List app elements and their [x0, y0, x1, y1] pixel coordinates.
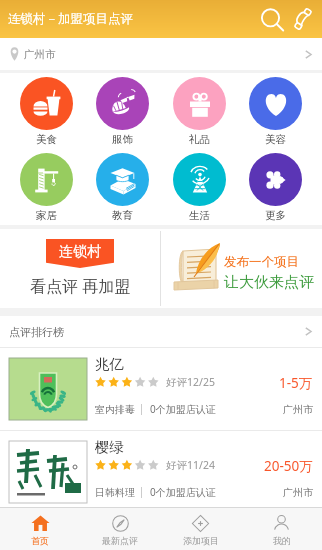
button[interactable]: 添加项目 — [160, 508, 241, 550]
button[interactable]: 广州市 — [0, 38, 322, 70]
staticText: 点评排行榜 — [9, 325, 64, 339]
staticText: 日韩料理 — [95, 486, 135, 499]
staticText: 好评11/24 — [166, 458, 215, 472]
staticText: 教育 — [112, 209, 133, 222]
staticText: 0个加盟店认证 — [150, 485, 216, 499]
button[interactable]: 教育 — [93, 149, 152, 222]
button[interactable]: 礼品 — [170, 73, 229, 146]
staticText: 20-50万 — [264, 457, 313, 473]
staticText: 礼品 — [189, 133, 210, 146]
button[interactable]: 家居 — [17, 149, 76, 222]
staticText: 服饰 — [112, 133, 133, 146]
staticText: 广州市 — [283, 486, 313, 499]
staticText: 连锁村－加盟项目点评 — [8, 11, 133, 27]
staticText: 添加项目 — [183, 535, 219, 546]
button[interactable]: 兆亿 — [0, 348, 322, 430]
staticText: 生活 — [189, 209, 210, 222]
staticText: 室内排毒 — [95, 403, 135, 416]
button[interactable]: 服饰 — [93, 73, 152, 146]
button[interactable]: Search — [255, 0, 289, 38]
button[interactable]: 发布一个项目 — [161, 229, 322, 308]
button[interactable]: 连锁村 — [0, 229, 160, 308]
staticText: 我的 — [273, 535, 291, 546]
button[interactable]: 首页 — [0, 508, 80, 550]
button[interactable]: 点评排行榜 — [0, 316, 322, 347]
button[interactable]: 最新点评 — [80, 508, 160, 550]
staticText: 首页 — [31, 535, 49, 546]
staticText: 樱绿 — [95, 438, 124, 454]
staticText: 美食 — [36, 133, 57, 146]
staticText: 最新点评 — [102, 535, 138, 546]
button[interactable]: 更多 — [246, 149, 305, 222]
staticText: 发布一个项目 — [224, 254, 299, 270]
staticText: 好评12/25 — [166, 375, 215, 389]
staticText: 美容 — [265, 133, 286, 146]
staticText: 连锁村 — [59, 243, 101, 261]
staticText: 1-5万 — [279, 374, 313, 390]
button[interactable]: 我的 — [241, 508, 322, 550]
button[interactable]: Call — [289, 0, 317, 38]
staticText: 家居 — [36, 209, 57, 222]
staticText: 更多 — [265, 209, 286, 222]
button[interactable]: 樱绿 — [0, 431, 322, 513]
button[interactable]: 美食 — [17, 73, 76, 146]
staticText: 兆亿 — [95, 355, 124, 371]
staticText: 看点评 再加盟 — [30, 275, 131, 297]
staticText: 0个加盟店认证 — [150, 402, 216, 416]
button[interactable]: 生活 — [170, 149, 229, 222]
button[interactable]: 美容 — [246, 73, 305, 146]
staticText: 广州市 — [283, 403, 313, 416]
staticText: 让大伙来点评 — [224, 273, 314, 292]
staticText: 广州市 — [24, 48, 56, 61]
